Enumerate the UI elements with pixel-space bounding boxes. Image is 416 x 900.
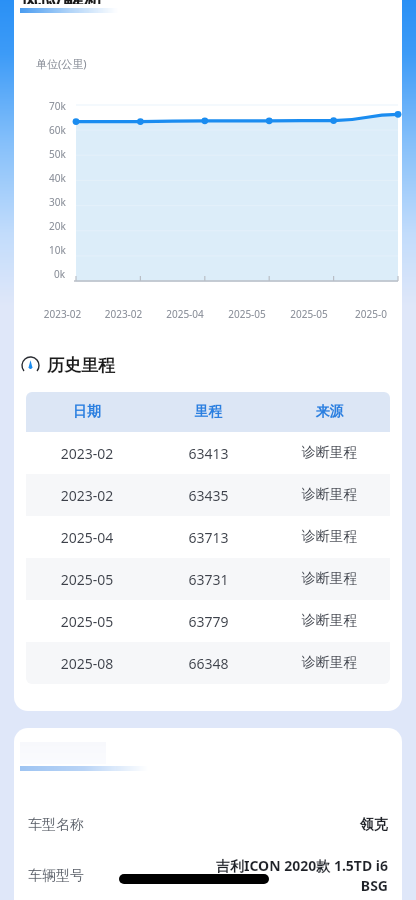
- staticText: 2023-02: [26, 444, 148, 463]
- staticText: 2023-02: [93, 307, 154, 321]
- button[interactable]: 2023-02: [26, 432, 390, 474]
- button[interactable]: 日期: [26, 392, 390, 432]
- staticText: 66348: [148, 654, 269, 673]
- button[interactable]: 2023-02: [26, 474, 390, 516]
- staticText: 63413: [148, 444, 269, 463]
- staticText: 车型名称: [28, 816, 84, 834]
- staticText: 2025-04: [26, 528, 148, 547]
- staticText: 领克: [360, 816, 388, 834]
- button[interactable]: 历史里程: [21, 355, 402, 376]
- staticText: 2025-0: [340, 307, 402, 321]
- staticText: 诊断里程: [269, 654, 390, 672]
- staticText: 单位(公里): [36, 56, 87, 71]
- staticText: 日期: [26, 403, 148, 421]
- staticText: 2025-05: [278, 307, 340, 321]
- staticText: 诊断里程: [269, 528, 390, 546]
- staticText: 63779: [148, 612, 269, 631]
- staticText: 10k: [49, 243, 66, 257]
- staticText: 2025-08: [26, 654, 148, 673]
- staticText: 63713: [148, 528, 269, 547]
- staticText: 诊断里程: [269, 486, 390, 504]
- staticText: 63731: [148, 570, 269, 589]
- staticText: 2025-05: [26, 570, 148, 589]
- staticText: 20k: [49, 219, 66, 233]
- button[interactable]: 2025-04: [26, 516, 390, 558]
- staticText: 风险解析: [20, 0, 104, 4]
- staticText: 2025-05: [216, 307, 278, 321]
- staticText: 70k: [49, 99, 66, 113]
- staticText: 诊断里程: [269, 444, 390, 462]
- button[interactable]: 车型名称: [28, 816, 388, 834]
- button[interactable]: 车辆型号: [28, 856, 388, 895]
- staticText: 里程: [148, 403, 269, 421]
- staticText: 2025-05: [26, 612, 148, 631]
- staticText: 2023-02: [26, 486, 148, 505]
- button[interactable]: 2025-05: [26, 600, 390, 642]
- staticText: 30k: [49, 195, 66, 209]
- staticText: 2023-02: [32, 307, 93, 321]
- staticText: 0k: [54, 267, 66, 281]
- staticText: 2025-04: [154, 307, 216, 321]
- staticText: 60k: [49, 123, 66, 137]
- staticText: 50k: [49, 147, 66, 161]
- staticText: 63435: [148, 486, 269, 505]
- staticText: 诊断里程: [269, 570, 390, 588]
- button[interactable]: 2025-08: [26, 642, 390, 684]
- staticText: 吉利ICON 2020款 1.5TD i6 BSG: [215, 856, 388, 895]
- staticText: 诊断里程: [269, 612, 390, 630]
- staticText: 40k: [49, 171, 66, 185]
- staticText: 来源: [269, 403, 390, 421]
- other: 历史里程: [21, 356, 40, 375]
- staticText: 历史里程: [47, 355, 115, 376]
- button[interactable]: 2025-05: [26, 558, 390, 600]
- staticText: 车辆型号: [28, 867, 84, 885]
